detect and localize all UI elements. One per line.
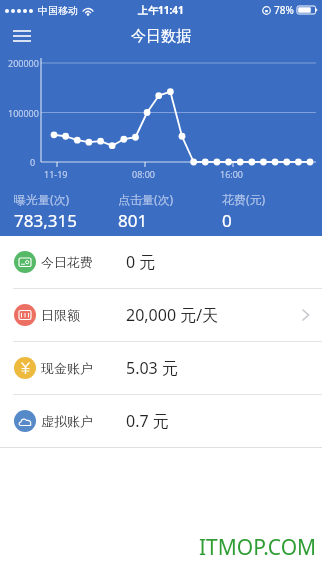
- button[interactable]: 日限额: [0, 289, 322, 341]
- staticText: 100000: [8, 107, 39, 119]
- staticText: 801: [118, 209, 148, 232]
- staticText: 现金账户: [41, 360, 93, 376]
- staticText: 花费(元): [222, 191, 266, 207]
- staticText: 200000: [8, 57, 39, 69]
- staticText: 08:00: [132, 168, 156, 180]
- staticText: 0 元: [126, 251, 156, 273]
- staticText: 曝光量(次): [14, 191, 70, 207]
- staticText: 783,315: [14, 209, 77, 232]
- button[interactable]: 现金账户: [0, 342, 322, 394]
- staticText: 中国移动: [38, 4, 78, 17]
- staticText: 0.7 元: [126, 410, 169, 432]
- staticText: 11-19: [44, 168, 68, 180]
- staticText: 0: [222, 209, 232, 232]
- staticText: 5.03 元: [126, 357, 178, 379]
- button[interactable]: 今日花费: [0, 236, 322, 288]
- staticText: 20,000 元/天: [126, 304, 219, 326]
- staticText: 点击量(次): [118, 191, 174, 207]
- staticText: 78%: [274, 3, 294, 17]
- staticText: 虚拟账户: [41, 413, 93, 429]
- staticText: 日限额: [41, 307, 80, 323]
- button[interactable]: 虚拟账户: [0, 395, 322, 447]
- button[interactable]: [13, 30, 31, 42]
- staticText: 上午11:41: [138, 3, 184, 17]
- staticText: 16:00: [220, 168, 244, 180]
- staticText: ITMOP.COM: [199, 533, 317, 562]
- staticText: 今日数据: [131, 27, 191, 46]
- staticText: 今日花费: [41, 254, 93, 270]
- staticText: 0: [30, 156, 36, 168]
